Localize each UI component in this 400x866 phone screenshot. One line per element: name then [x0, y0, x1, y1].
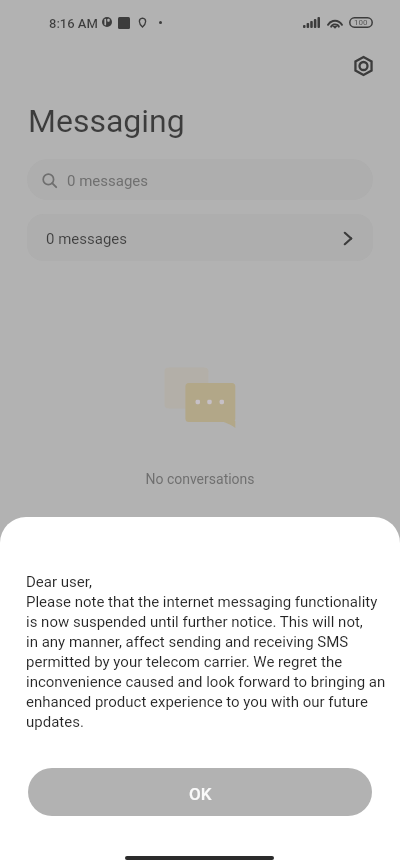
button[interactable]: OK: [28, 768, 372, 816]
staticText: No conversations: [0, 471, 400, 487]
staticText: 0 messages: [46, 230, 128, 248]
button[interactable]: 0 messages: [27, 214, 373, 261]
staticText: 8:16 AM: [49, 16, 98, 31]
staticText: 0 messages: [67, 172, 149, 190]
staticText: 100: [354, 18, 368, 27]
staticText: OK: [189, 784, 212, 804]
staticText: Messaging: [28, 102, 185, 140]
button[interactable]: Settings: [342, 44, 385, 87]
button[interactable]: 0 messages: [27, 159, 373, 200]
staticText: Dear user, Please note that the internet…: [26, 573, 392, 730]
